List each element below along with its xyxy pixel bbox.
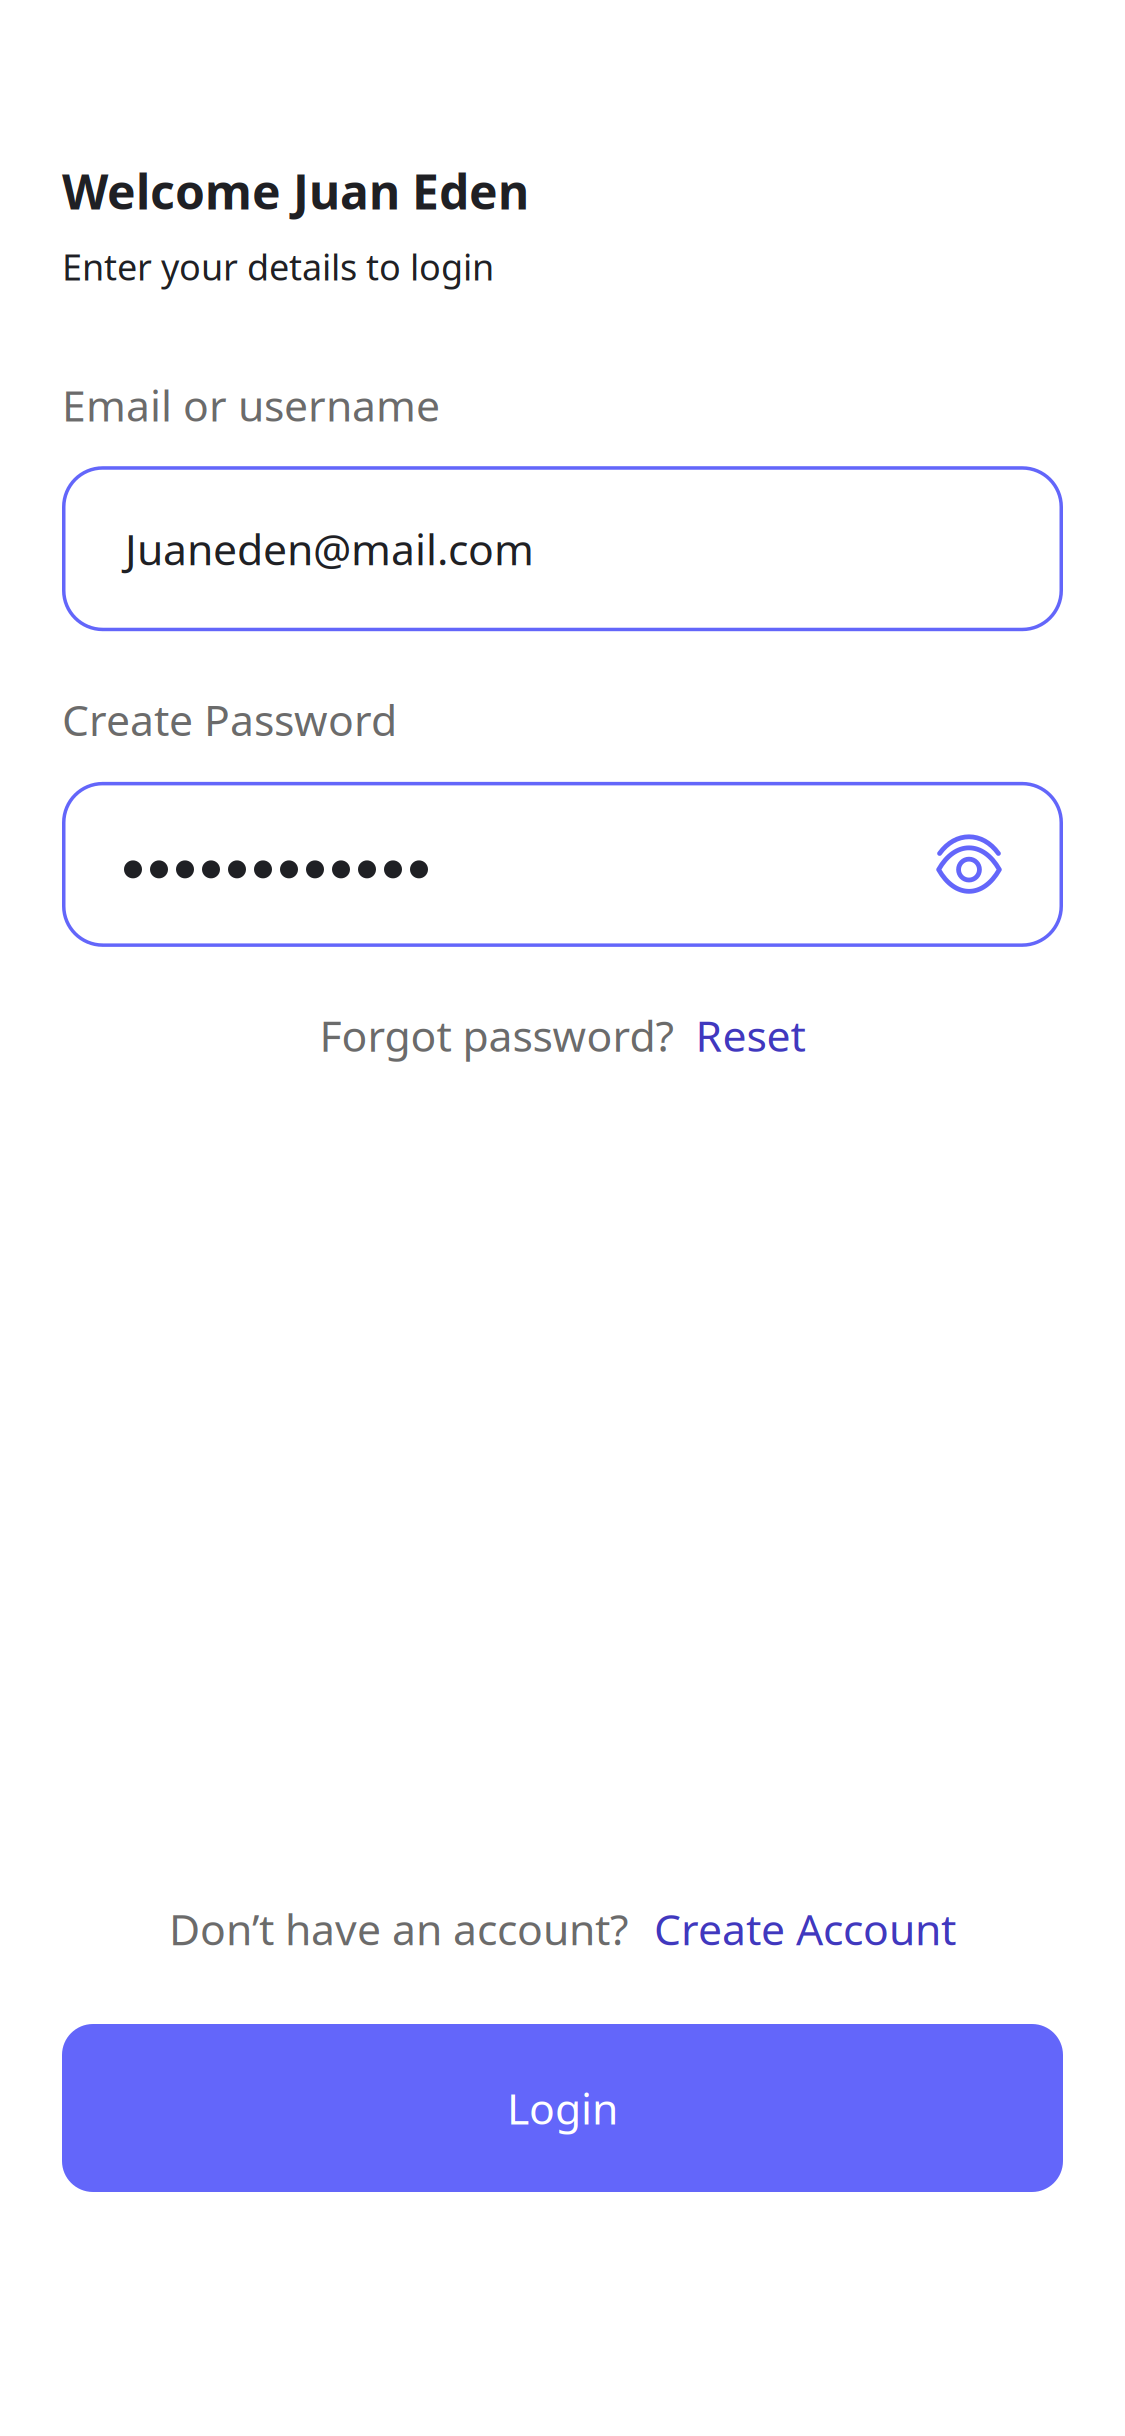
button[interactable]: Login — [62, 2024, 1063, 2192]
button[interactable]: Reset — [695, 1007, 805, 1064]
button[interactable]: Show password — [938, 836, 1000, 892]
staticText: Juaneden@mail.com — [125, 520, 534, 577]
staticText: Reset — [695, 1007, 805, 1064]
button[interactable]: Create Password — [62, 782, 1063, 947]
staticText: Create Password — [62, 691, 397, 748]
staticText: Forgot password? — [319, 1007, 674, 1064]
staticText: Enter your details to login — [62, 243, 494, 290]
button[interactable]: Juaneden@mail.com — [62, 466, 1063, 631]
staticText: Email or username — [62, 376, 440, 433]
staticText: Create Account — [654, 1900, 956, 1957]
button[interactable]: Create Account — [654, 1900, 956, 1957]
staticText: Don’t have an account? — [169, 1900, 629, 1957]
staticText: Login — [507, 2080, 618, 2136]
staticText: Welcome Juan Eden — [62, 159, 529, 223]
